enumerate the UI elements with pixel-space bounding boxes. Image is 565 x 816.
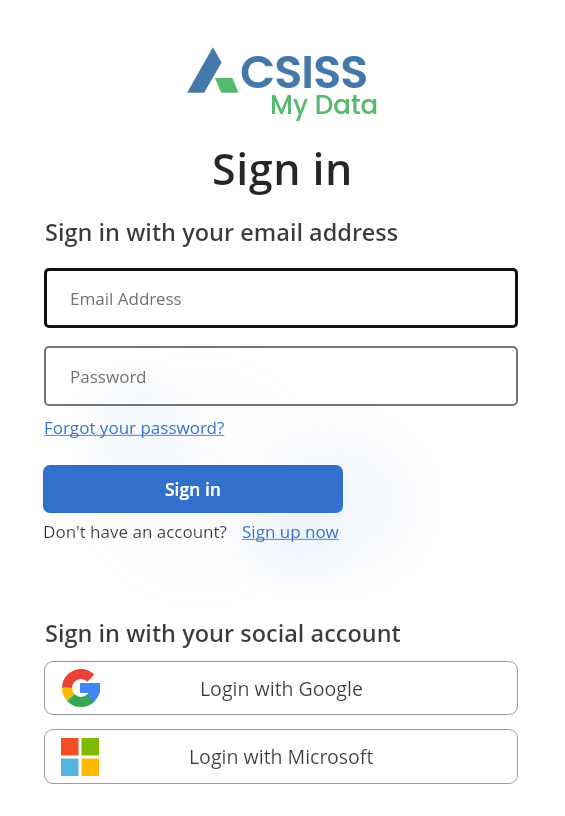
staticText: Sign in (0, 139, 565, 198)
button[interactable]: Login with Microsoft (44, 729, 518, 784)
staticText: Sign in with your email address (45, 216, 399, 248)
button[interactable]: Password (44, 346, 518, 406)
staticText: Sign in (165, 477, 221, 501)
button[interactable]: Forgot your password? (44, 416, 225, 439)
button[interactable]: Sign in (43, 465, 343, 513)
staticText: Email Address (70, 287, 182, 310)
staticText: Don't have an account? (43, 520, 227, 543)
button[interactable]: Login with Google (44, 661, 518, 715)
button[interactable]: Sign up now (242, 520, 339, 543)
staticText: Password (70, 365, 147, 388)
staticText: CSISS (240, 40, 368, 104)
staticText: My Data (270, 87, 379, 123)
staticText: Login with Google (200, 675, 363, 702)
button[interactable]: Email Address (44, 268, 518, 328)
staticText: Login with Microsoft (189, 743, 374, 770)
staticText: Sign in with your social account (45, 617, 401, 649)
